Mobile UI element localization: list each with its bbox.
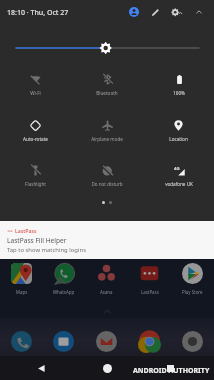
staticText: Bluetooth [96, 90, 118, 96]
staticText: Play Store [182, 289, 203, 295]
button[interactable]: Asana [85, 263, 128, 298]
button[interactable]: Collapse [190, 3, 207, 20]
staticText: 100% [173, 90, 185, 96]
button[interactable]: Gmail [85, 330, 128, 352]
button[interactable]: Maps [0, 263, 42, 298]
button[interactable]: LastPass [0, 221, 214, 259]
staticText: Tap to show matching logins [7, 246, 86, 254]
staticText: LastPass [141, 289, 159, 295]
button[interactable]: Back [30, 357, 52, 379]
button[interactable]: Flashlight [0, 157, 71, 197]
button[interactable]: Brightness [0, 38, 214, 58]
staticText: Maps [16, 289, 28, 295]
button[interactable]: Auto-rotate [0, 112, 71, 152]
button[interactable]: Recents [159, 357, 181, 379]
staticText: Wi-Fi [30, 90, 41, 96]
button[interactable]: Play Store [171, 263, 214, 298]
button[interactable]: LastPass [128, 263, 171, 298]
button[interactable]: 4G [143, 157, 214, 197]
staticText: Auto-rotate [23, 136, 48, 142]
button[interactable]: Phone [0, 330, 42, 352]
staticText: 4G [174, 166, 180, 172]
button[interactable]: WhatsApp [42, 263, 85, 298]
staticText: vodafone UK [165, 181, 193, 187]
button[interactable]: Account [125, 3, 143, 21]
button[interactable]: Camera [171, 330, 214, 352]
button[interactable]: Messages [42, 330, 85, 352]
button[interactable]: Wi-Fi [0, 66, 71, 106]
button[interactable]: Home [96, 357, 118, 379]
staticText: LastPass [15, 227, 37, 234]
staticText: Location [169, 136, 188, 142]
button[interactable]: Airplane mode [71, 112, 142, 152]
staticText: 18:10 · Thu, Oct 27 [7, 8, 69, 18]
button[interactable]: Location [143, 112, 214, 152]
button[interactable]: 100% [143, 66, 214, 106]
button[interactable]: Chrome [128, 330, 171, 352]
staticText: Airplane mode [91, 136, 123, 142]
staticText: ANDROID AUTHORITY [133, 366, 210, 376]
button[interactable]: Edit [146, 3, 164, 21]
staticText: WhatsApp [53, 289, 75, 295]
staticText: Do not disturb [91, 181, 123, 187]
button[interactable]: Do not disturb [71, 157, 142, 197]
button[interactable]: Bluetooth [71, 66, 142, 106]
staticText: LastPass Fill Helper [7, 236, 67, 245]
staticText: Asana [100, 289, 113, 295]
button[interactable]: Settings [169, 3, 187, 21]
staticText: Flashlight [25, 181, 46, 187]
